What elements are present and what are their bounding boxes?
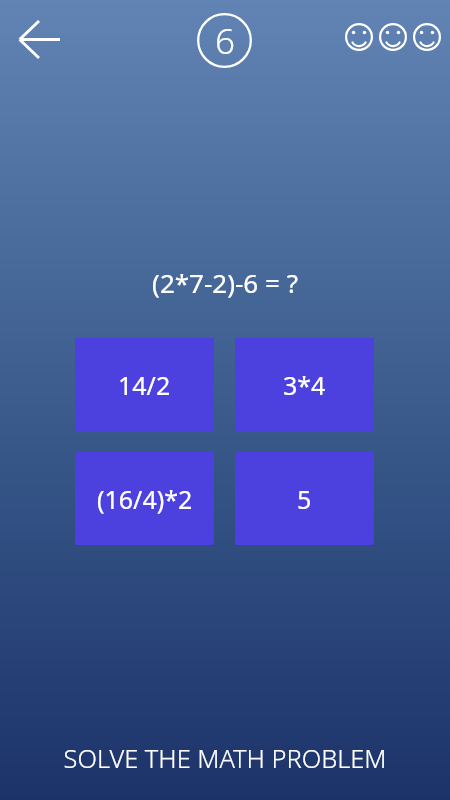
button[interactable]: Lives remaining: 3 [345,23,441,51]
staticText: 14/2 [118,368,171,402]
staticText: 3*4 [283,368,326,402]
button[interactable]: 3*4 [235,338,374,431]
button[interactable]: Level 6 [197,13,252,68]
staticText: (2*7-2)-6 = ? [0,265,450,300]
staticText: (16/4)*2 [97,482,193,516]
staticText: SOLVE THE MATH PROBLEM [0,741,450,776]
staticText: 5 [297,482,312,516]
button[interactable]: 5 [235,452,374,545]
staticText: 6 [215,17,235,65]
button[interactable]: (16/4)*2 [75,452,214,545]
button[interactable]: 14/2 [75,338,214,431]
button[interactable]: Back [12,15,68,65]
